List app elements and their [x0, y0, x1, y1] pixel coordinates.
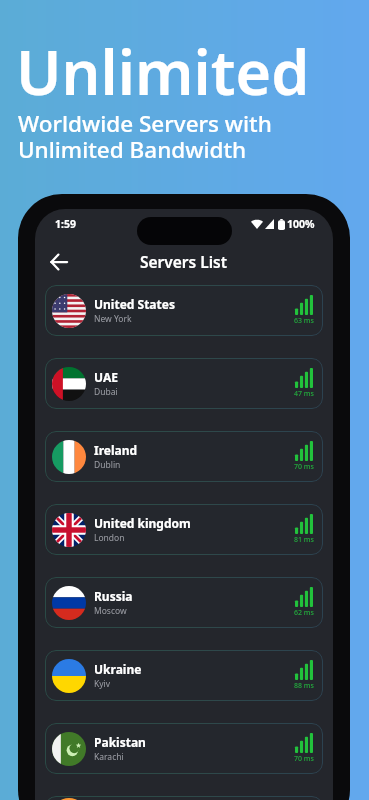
staticText: United kingdom: [94, 515, 191, 531]
button[interactable]: UAE: [45, 358, 323, 409]
button[interactable]: United States: [45, 285, 323, 336]
staticText: Moscow: [94, 605, 127, 617]
button[interactable]: Back: [43, 246, 75, 278]
staticText: 1:59: [55, 217, 76, 231]
staticText: 47 ms: [294, 389, 314, 399]
staticText: 88 ms: [294, 681, 314, 691]
staticText: Russia: [94, 588, 133, 604]
staticText: 70 ms: [294, 754, 314, 764]
staticText: Ukraine: [94, 661, 142, 677]
staticText: Servers List: [140, 251, 228, 272]
staticText: 62 ms: [294, 608, 314, 618]
staticText: 63 ms: [294, 316, 314, 326]
button[interactable]: Russia: [45, 577, 323, 628]
button[interactable]: Ireland: [45, 431, 323, 482]
staticText: Kyiv: [94, 678, 111, 690]
staticText: 70 ms: [294, 462, 314, 472]
button[interactable]: Ukraine: [45, 650, 323, 701]
button[interactable]: Pakistan: [45, 723, 323, 774]
staticText: 100%: [287, 217, 315, 231]
staticText: Dublin: [94, 459, 121, 471]
staticText: 81 ms: [294, 535, 314, 545]
staticText: Pakistan: [94, 734, 146, 750]
staticText: Dubai: [94, 386, 118, 398]
staticText: London: [94, 532, 125, 544]
staticText: New York: [94, 313, 132, 325]
button[interactable]: United kingdom: [45, 504, 323, 555]
button[interactable]: India: [45, 796, 323, 800]
staticText: UAE: [94, 369, 118, 385]
staticText: Karachi: [94, 751, 124, 763]
staticText: Worldwide Servers with Unlimited Bandwid…: [18, 108, 272, 165]
staticText: Ireland: [94, 442, 138, 458]
staticText: Unlimited: [16, 30, 310, 113]
staticText: United States: [94, 296, 175, 312]
